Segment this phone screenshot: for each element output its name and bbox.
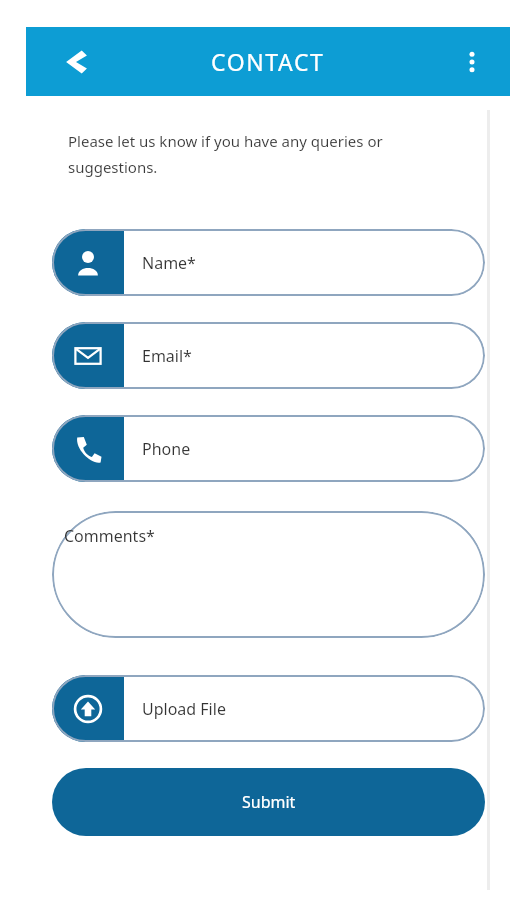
staticText: Upload File [142, 698, 226, 720]
button[interactable]: Phone [52, 415, 485, 482]
button[interactable]: Submit [52, 768, 485, 836]
staticText: Please let us know if you have any queri… [68, 131, 383, 178]
staticText: Phone [142, 438, 191, 460]
button[interactable] [52, 511, 485, 638]
button[interactable]: Back [48, 34, 104, 90]
staticText: CONTACT [211, 46, 325, 77]
staticText: Submit [242, 791, 296, 813]
button[interactable]: Email* [52, 322, 485, 389]
staticText: Comments* [64, 525, 155, 547]
button[interactable]: Name* [52, 229, 485, 296]
staticText: Name* [142, 252, 196, 274]
button[interactable]: More options [448, 38, 496, 86]
staticText: Email* [142, 345, 192, 367]
button[interactable]: Upload File [52, 675, 485, 742]
